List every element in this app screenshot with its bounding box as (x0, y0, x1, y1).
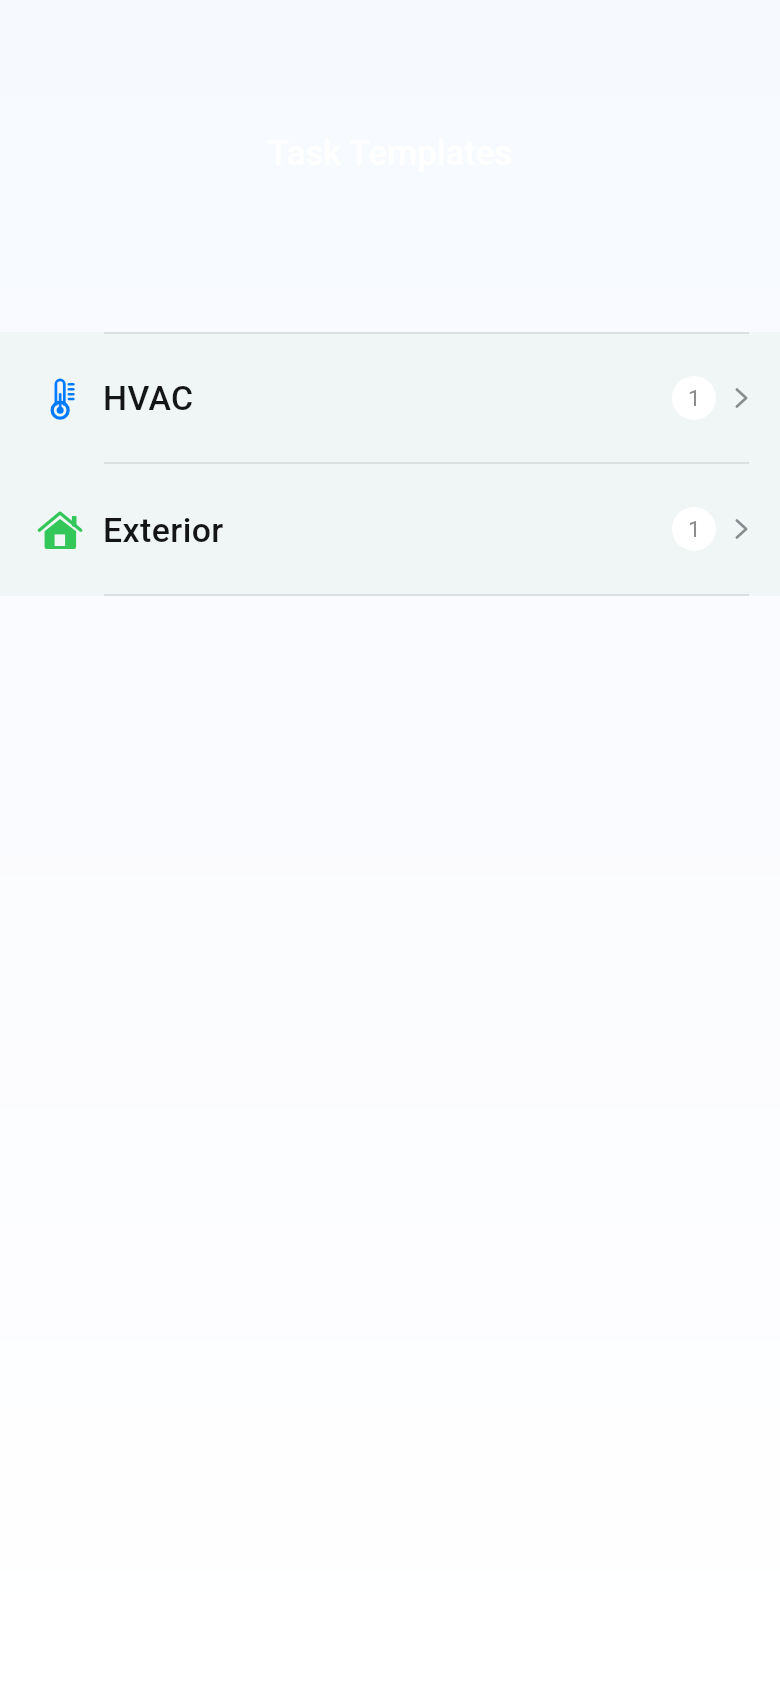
other: Open (731, 514, 761, 544)
button[interactable]: HVAC (0, 334, 780, 462)
staticText: 1 (688, 385, 701, 411)
staticText: Task Templates (268, 133, 513, 174)
staticText: 1 (688, 516, 701, 542)
button[interactable]: Exterior (0, 464, 780, 594)
staticText: HVAC (103, 379, 194, 419)
staticText: Exterior (103, 511, 224, 551)
other: Open (731, 383, 761, 413)
